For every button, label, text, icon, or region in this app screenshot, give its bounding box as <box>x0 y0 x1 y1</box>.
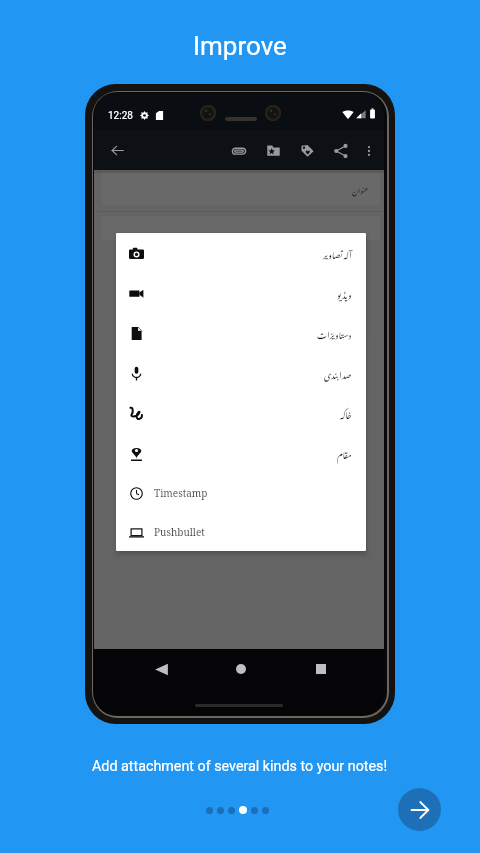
staticText: ویڈیو <box>337 283 352 304</box>
button[interactable]: صدا بندی <box>116 353 366 393</box>
staticText: Add attachment of several kinds to your … <box>92 758 388 775</box>
button[interactable]: Next <box>398 788 441 831</box>
staticText: صدا بندی <box>324 363 352 384</box>
staticText: Timestamp <box>154 486 208 500</box>
button[interactable]: Attach <box>222 134 255 167</box>
button[interactable]: دستاویزات <box>116 313 366 353</box>
staticText: Pushbullet <box>154 525 205 539</box>
button[interactable]: Favorite <box>257 134 290 167</box>
button[interactable]: Back <box>101 134 134 167</box>
button[interactable]: Home <box>224 652 258 686</box>
staticText: آلہ تصاویر <box>323 243 352 264</box>
staticText: 12:28 <box>108 110 133 121</box>
button[interactable]: Tags <box>291 134 324 167</box>
button[interactable]: آلہ تصاویر <box>116 233 366 273</box>
button[interactable]: ویڈیو <box>116 273 366 313</box>
button[interactable]: Recent apps <box>304 652 338 686</box>
button[interactable]: Share <box>324 134 357 167</box>
button[interactable]: Pushbullet <box>116 513 366 551</box>
button[interactable]: خاکہ <box>116 393 366 433</box>
button[interactable]: More options <box>352 134 384 167</box>
staticText: Improve <box>193 31 287 61</box>
staticText: دستاویزات <box>317 323 352 344</box>
staticText: خاکہ <box>340 403 352 424</box>
button[interactable]: مقام <box>116 433 366 473</box>
button[interactable]: Back <box>144 652 178 686</box>
staticText: عنوان <box>352 181 369 199</box>
staticText: مقام <box>337 443 352 464</box>
button[interactable]: Timestamp <box>116 473 366 513</box>
